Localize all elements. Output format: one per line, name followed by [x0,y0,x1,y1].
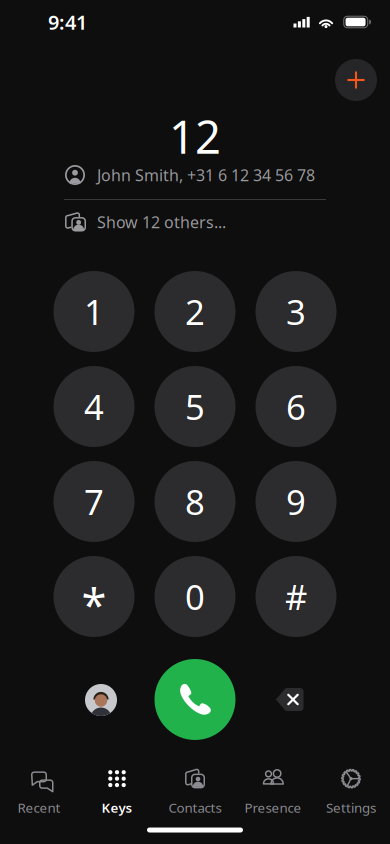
button[interactable]: Delete [274,687,304,712]
button[interactable]: Call [154,659,235,740]
staticText: Show 12 others... [97,211,226,233]
button[interactable]: 4 [53,366,134,447]
staticText: Keys [101,799,132,816]
staticText: 6 [286,383,306,429]
staticText: * [81,574,106,635]
staticText: Contacts [168,799,221,816]
staticText: 0 [185,573,205,619]
button[interactable]: Contact photo [85,684,117,716]
button[interactable]: Recent [0,766,78,818]
button[interactable]: Presence [234,766,312,818]
staticText: 4 [84,383,104,429]
staticText: 7 [84,478,104,524]
staticText: 9 [286,478,306,524]
staticText: 9:41 [48,9,87,35]
staticText: 2 [185,288,205,334]
button[interactable]: * [53,556,134,637]
button[interactable]: Show 12 others... [65,203,327,241]
staticText: 12 [169,106,221,166]
button[interactable]: Settings [312,766,390,818]
staticText: 8 [185,478,205,524]
button[interactable]: 7 [53,461,134,542]
button[interactable]: 8 [154,461,235,542]
staticText: 5 [185,383,205,429]
button[interactable]: Keys [78,766,156,818]
staticText: 3 [286,288,306,334]
button[interactable]: 0 [154,556,235,637]
button[interactable]: Contacts [156,766,234,818]
button[interactable]: 2 [154,271,235,352]
button[interactable]: 9 [255,461,336,542]
button[interactable]: 3 [255,271,336,352]
staticText: 1 [84,288,104,334]
button[interactable]: 1 [53,271,134,352]
staticText: Presence [244,799,301,816]
button[interactable]: # [255,556,336,637]
staticText: Settings [326,799,376,816]
staticText: Recent [17,799,60,816]
button[interactable]: John Smith, +31 6 12 34 56 78 [65,156,327,194]
button[interactable]: 6 [255,366,336,447]
button[interactable]: Add contact [335,59,377,101]
staticText: # [285,573,307,619]
button[interactable]: 5 [154,366,235,447]
staticText: John Smith, +31 6 12 34 56 78 [97,164,315,186]
